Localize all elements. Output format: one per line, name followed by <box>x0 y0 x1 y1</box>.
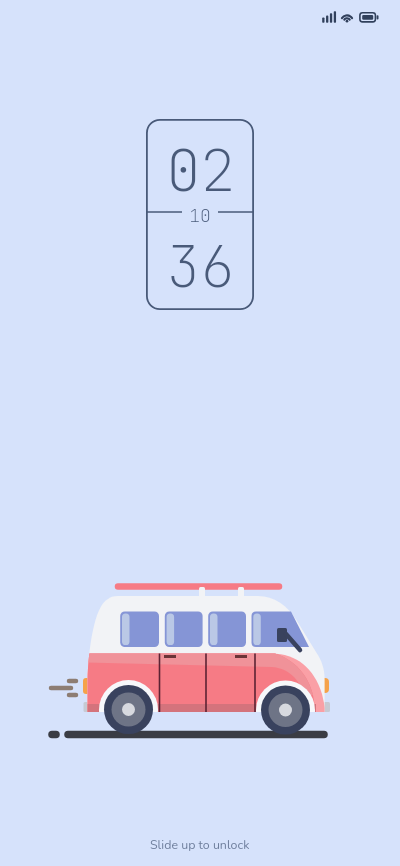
other: Status bar <box>0 0 400 36</box>
staticText: 02 <box>166 133 235 208</box>
staticText: 36 <box>166 229 235 304</box>
staticText: 10 <box>189 204 211 228</box>
button[interactable]: 02 <box>146 119 254 310</box>
staticText: Slide up to unlock <box>150 836 250 853</box>
button[interactable]: Slide up to unlock <box>0 836 400 866</box>
